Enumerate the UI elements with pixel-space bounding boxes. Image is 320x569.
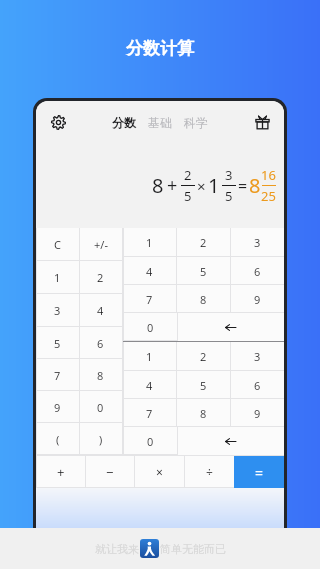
staticText: × [197,176,206,196]
staticText: 1 [146,349,153,364]
button[interactable]: 0 [79,391,122,423]
button[interactable]: 0 [123,427,177,455]
button[interactable]: 7 [123,399,176,427]
button[interactable]: Backspace [177,313,284,341]
button[interactable]: +/- [79,228,122,261]
staticText: 基础 [148,115,172,130]
staticText: 8 [249,172,261,199]
button[interactable]: Backspace [177,427,284,455]
button[interactable]: 0 [123,313,177,341]
button[interactable]: Gift [249,109,275,135]
button[interactable]: + [36,456,85,488]
button[interactable]: 9 [230,399,284,427]
button[interactable]: 6 [230,257,284,285]
staticText: 4 [97,303,104,318]
staticText: 3 [54,303,61,318]
staticText: 简单无能而已 [160,542,226,556]
staticText: 6 [254,378,261,393]
button[interactable]: 5 [36,327,79,359]
staticText: 9 [254,406,261,421]
staticText: ) [99,432,103,447]
staticText: 9 [54,400,61,415]
button[interactable]: 8 [176,285,230,313]
staticText: × [156,464,163,480]
button[interactable]: 4 [123,257,176,285]
button[interactable]: 科学 [181,111,211,134]
staticText: 就让我来 [95,542,139,556]
staticText: 2 [200,235,207,250]
staticText: +/- [94,237,108,252]
staticText: ÷ [206,464,213,480]
button[interactable]: 5 [176,257,230,285]
button[interactable]: 8 [79,359,122,391]
button[interactable]: 基础 [145,111,175,134]
staticText: ( [56,432,60,447]
button[interactable]: 3 [230,342,284,371]
button[interactable]: 2 [176,342,230,371]
staticText: 分数计算 [126,38,194,59]
staticText: = [255,463,264,482]
button[interactable]: 1 [123,342,176,371]
staticText: 2 [200,349,207,364]
button[interactable]: 6 [230,371,284,399]
staticText: 5 [200,378,207,393]
staticText: 2 [184,166,192,184]
button[interactable]: ( [36,423,79,455]
staticText: 0 [147,320,154,335]
button[interactable]: 4 [123,371,176,399]
button[interactable]: Settings [45,109,71,135]
button[interactable]: 7 [123,285,176,313]
button[interactable]: 7 [36,359,79,391]
staticText: 3 [254,349,261,364]
staticText: 3 [225,166,233,184]
staticText: 3 [254,235,261,250]
button[interactable]: × [134,456,184,488]
staticText: 4 [146,264,153,279]
staticText: = [238,175,248,197]
staticText: 1 [54,270,61,285]
staticText: 6 [97,336,104,351]
button[interactable]: 1 [36,261,79,294]
staticText: 4 [146,378,153,393]
button[interactable]: C [36,228,79,261]
button[interactable]: 3 [36,294,79,327]
button[interactable]: − [85,456,134,488]
staticText: 0 [97,400,104,415]
staticText: 8 [152,172,164,199]
button[interactable]: 9 [230,285,284,313]
staticText: 6 [254,264,261,279]
staticText: 5 [225,187,233,205]
staticText: 7 [146,406,153,421]
button[interactable]: ) [79,423,122,455]
button[interactable]: 分数 [109,111,139,134]
staticText: 25 [261,187,276,205]
staticText: 16 [261,166,276,184]
staticText: 分数 [112,115,136,130]
button[interactable]: 6 [79,327,122,359]
staticText: 8 [97,368,104,383]
button[interactable]: 9 [36,391,79,423]
staticText: 8 [200,406,207,421]
button[interactable]: 2 [79,261,122,294]
staticText: 5 [54,336,61,351]
staticText: − [106,463,114,481]
staticText: 9 [254,292,261,307]
staticText: 5 [184,187,192,205]
staticText: 0 [147,434,154,449]
button[interactable]: = [234,456,284,488]
staticText: 7 [54,368,61,383]
staticText: C [54,237,61,252]
staticText: + [167,173,178,198]
button[interactable]: 3 [230,228,284,257]
button[interactable]: 4 [79,294,122,327]
button[interactable]: 2 [176,228,230,257]
button[interactable]: 1 [123,228,176,257]
button[interactable]: 8 [176,399,230,427]
staticText: + [57,463,65,481]
staticText: 8 [200,292,207,307]
button[interactable]: ÷ [184,456,234,488]
staticText: 2 [97,270,104,285]
staticText: 5 [200,264,207,279]
staticText: 1 [146,235,153,250]
button[interactable]: 5 [176,371,230,399]
